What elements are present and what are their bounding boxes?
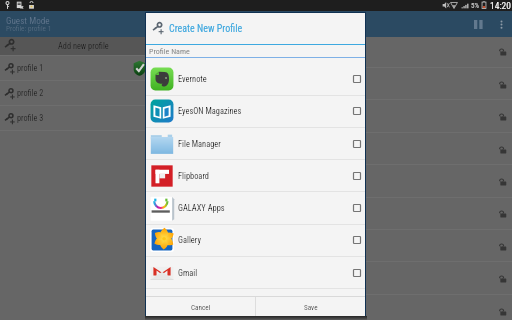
button[interactable]: profile 2 <box>0 81 145 105</box>
staticText: 5% <box>471 2 479 10</box>
button[interactable]: Unlocked <box>0 68 512 100</box>
button[interactable]: Unlocked <box>0 230 512 262</box>
staticText: Gmail <box>178 268 198 278</box>
button[interactable]: File Manager <box>146 128 365 160</box>
staticText: Gallery <box>178 235 201 245</box>
other: Unlocked <box>498 47 507 56</box>
button[interactable]: Unlocked <box>0 100 512 132</box>
staticText: profile 1 <box>17 63 44 73</box>
button[interactable]: Unlocked <box>0 262 512 294</box>
button[interactable]: Gmail <box>146 257 365 289</box>
staticText: Cancel <box>191 303 211 311</box>
button[interactable]: Save <box>256 297 365 316</box>
other: Unlocked <box>498 177 507 186</box>
staticText: profile 3 <box>17 113 44 123</box>
button[interactable]: profile 3 <box>0 106 145 130</box>
other: Unlocked <box>498 112 507 121</box>
staticText: Evernote <box>178 74 207 84</box>
button[interactable]: GALAXY Apps <box>146 192 365 224</box>
button[interactable]: profile 1 <box>0 56 145 80</box>
button[interactable]: Add new profile <box>0 36 145 55</box>
staticText: Save <box>304 303 318 311</box>
button[interactable]: More options <box>492 15 510 33</box>
staticText: EyesON Magazines <box>178 106 242 116</box>
staticText: Profile Name <box>149 47 190 56</box>
staticText: Profile: profile 1 <box>6 24 52 33</box>
button[interactable]: Gallery <box>146 224 365 256</box>
other: Unlocked <box>498 145 507 154</box>
button[interactable]: Flipboard <box>146 160 365 192</box>
button[interactable]: Cancel <box>146 297 255 316</box>
staticText: GALAXY Apps <box>178 203 225 213</box>
button[interactable]: Unlocked <box>0 295 512 320</box>
button[interactable]: Unlocked <box>0 197 512 229</box>
staticText: 14:20 <box>490 0 511 11</box>
staticText: File Manager <box>178 139 221 149</box>
button[interactable]: Evernote <box>146 63 365 95</box>
other: Unlocked <box>498 242 507 251</box>
staticText: Guest Mode <box>6 15 50 26</box>
other: Unlocked <box>498 307 507 316</box>
staticText: profile 2 <box>17 88 44 98</box>
other: Unlocked <box>498 274 507 283</box>
button[interactable]: Unlocked <box>0 165 512 197</box>
staticText: Create New Profile <box>169 23 243 35</box>
other: Unlocked <box>498 209 507 218</box>
staticText: Add new profile <box>58 41 109 51</box>
button[interactable]: EyesON Magazines <box>146 95 365 127</box>
button[interactable]: Pause <box>469 15 487 33</box>
other: Unlocked <box>498 80 507 89</box>
button[interactable]: Unlocked <box>0 133 512 165</box>
staticText: Flipboard <box>178 171 210 181</box>
button[interactable]: Unlocked <box>0 35 512 67</box>
